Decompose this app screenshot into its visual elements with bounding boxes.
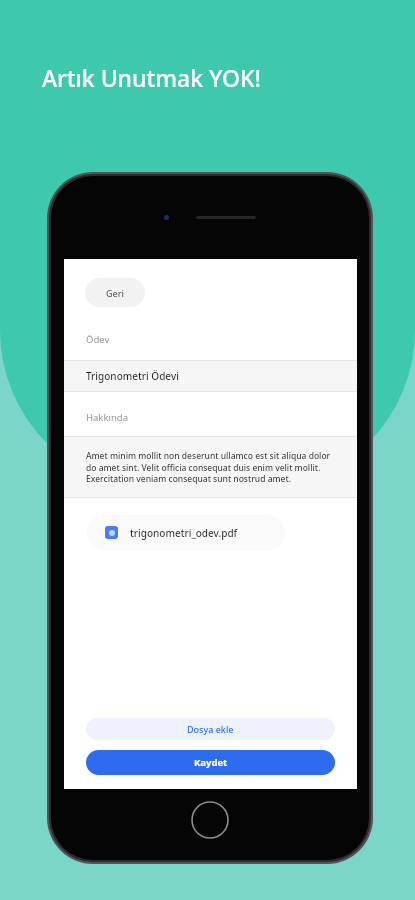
button[interactable]: trigonometri_odev.pdf	[87, 515, 285, 550]
staticText: Hakkında	[86, 411, 129, 424]
button[interactable]: Amet minim mollit non deserunt ullamco e…	[64, 437, 357, 497]
staticText: Geri	[106, 287, 124, 299]
button[interactable]: Trigonometri Ödevi	[64, 361, 357, 391]
staticText: Ödev	[86, 333, 110, 346]
staticText: Amet minim mollit non deserunt ullamco e…	[86, 450, 341, 485]
staticText: Dosya ekle	[187, 723, 234, 735]
button[interactable]: Home	[191, 801, 229, 839]
staticText: trigonometri_odev.pdf	[130, 526, 238, 540]
staticText: Trigonometri Ödevi	[86, 369, 179, 383]
staticText: Artık Unutmak YOK!	[42, 62, 261, 93]
button[interactable]: Kaydet	[86, 750, 335, 775]
button[interactable]: Geri	[85, 278, 145, 307]
staticText: Kaydet	[194, 756, 228, 769]
button[interactable]: Dosya ekle	[86, 718, 335, 740]
